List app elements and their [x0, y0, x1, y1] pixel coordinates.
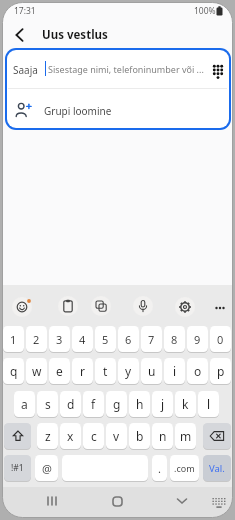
- staticText: j: [161, 396, 165, 412]
- button[interactable]: j: [152, 391, 173, 417]
- button[interactable]: .com: [170, 455, 199, 481]
- staticText: o: [194, 363, 202, 379]
- button[interactable]: 5: [95, 326, 116, 352]
- button[interactable]: i: [164, 358, 185, 384]
- staticText: g: [113, 396, 121, 412]
- staticText: r: [80, 363, 85, 379]
- button[interactable]: [91, 296, 111, 316]
- staticText: e: [56, 363, 63, 379]
- staticText: y: [125, 363, 132, 379]
- staticText: l: [207, 396, 211, 412]
- button[interactable]: [58, 296, 78, 316]
- button[interactable]: Val.: [203, 455, 231, 481]
- button[interactable]: [8, 24, 32, 46]
- button[interactable]: e: [49, 358, 70, 384]
- staticText: 17:31: [14, 5, 36, 17]
- button[interactable]: u: [141, 358, 162, 384]
- staticText: 3: [56, 332, 63, 347]
- staticText: d: [67, 396, 75, 412]
- staticText: u: [148, 363, 156, 379]
- button[interactable]: a: [14, 391, 35, 417]
- staticText: @: [42, 461, 52, 476]
- button[interactable]: @: [35, 455, 58, 481]
- button[interactable]: p: [210, 358, 231, 384]
- button[interactable]: [4, 423, 31, 449]
- button[interactable]: [168, 487, 196, 515]
- button[interactable]: m: [175, 423, 196, 449]
- button[interactable]: [38, 487, 66, 515]
- staticText: 8: [171, 332, 178, 347]
- button[interactable]: c: [83, 423, 104, 449]
- staticText: Grupi loomine: [44, 104, 112, 118]
- staticText: k: [182, 396, 189, 412]
- button[interactable]: [103, 487, 131, 515]
- button[interactable]: 1: [3, 326, 24, 352]
- button[interactable]: [210, 298, 230, 318]
- button[interactable]: [7, 50, 229, 88]
- button[interactable]: v: [106, 423, 127, 449]
- button[interactable]: s: [37, 391, 58, 417]
- button[interactable]: [175, 297, 195, 317]
- button[interactable]: 8: [164, 326, 185, 352]
- button[interactable]: f: [83, 391, 104, 417]
- button[interactable]: 6: [118, 326, 139, 352]
- staticText: a: [21, 396, 28, 412]
- button[interactable]: h: [129, 391, 150, 417]
- button[interactable]: b: [129, 423, 150, 449]
- button[interactable]: [7, 89, 229, 128]
- button[interactable]: [205, 58, 230, 83]
- button[interactable]: w: [26, 358, 47, 384]
- staticText: v: [113, 428, 120, 444]
- staticText: .: [158, 461, 161, 476]
- button[interactable]: [12, 297, 32, 317]
- staticText: 4: [79, 332, 86, 347]
- staticText: f: [91, 396, 96, 412]
- button[interactable]: l: [198, 391, 219, 417]
- staticText: z: [45, 428, 51, 444]
- staticText: 5: [102, 332, 109, 347]
- button[interactable]: r: [72, 358, 93, 384]
- button[interactable]: z: [37, 423, 58, 449]
- staticText: 100%: [194, 5, 216, 17]
- button[interactable]: x: [60, 423, 81, 449]
- staticText: s: [45, 396, 51, 412]
- staticText: t: [103, 363, 108, 379]
- button[interactable]: [133, 296, 153, 316]
- button[interactable]: .: [152, 455, 167, 481]
- button[interactable]: 9: [187, 326, 208, 352]
- staticText: h: [136, 396, 144, 412]
- button[interactable]: g: [106, 391, 127, 417]
- button[interactable]: k: [175, 391, 196, 417]
- button[interactable]: t: [95, 358, 116, 384]
- staticText: q: [10, 363, 18, 379]
- button[interactable]: !#1: [4, 455, 31, 481]
- staticText: i: [173, 363, 177, 379]
- staticText: 0: [217, 332, 224, 347]
- staticText: Uus vestlus: [42, 27, 108, 43]
- staticText: n: [159, 428, 167, 444]
- button[interactable]: 7: [141, 326, 162, 352]
- button[interactable]: 0: [210, 326, 231, 352]
- button[interactable]: 4: [72, 326, 93, 352]
- button[interactable]: [203, 423, 231, 449]
- staticText: 9: [194, 332, 201, 347]
- staticText: w: [32, 363, 42, 379]
- staticText: 6: [125, 332, 132, 347]
- button[interactable]: 3: [49, 326, 70, 352]
- staticText: p: [217, 363, 225, 379]
- button[interactable]: n: [152, 423, 173, 449]
- button[interactable]: d: [60, 391, 81, 417]
- staticText: 7: [148, 332, 155, 347]
- staticText: 1: [10, 332, 17, 347]
- button[interactable]: y: [118, 358, 139, 384]
- staticText: b: [136, 428, 144, 444]
- staticText: x: [67, 428, 74, 444]
- button[interactable]: [206, 492, 232, 514]
- staticText: !#1: [11, 462, 24, 474]
- button[interactable]: o: [187, 358, 208, 384]
- staticText: Saaja: [13, 63, 38, 77]
- staticText: 2: [33, 332, 40, 347]
- button[interactable]: q: [3, 358, 24, 384]
- button[interactable]: 2: [26, 326, 47, 352]
